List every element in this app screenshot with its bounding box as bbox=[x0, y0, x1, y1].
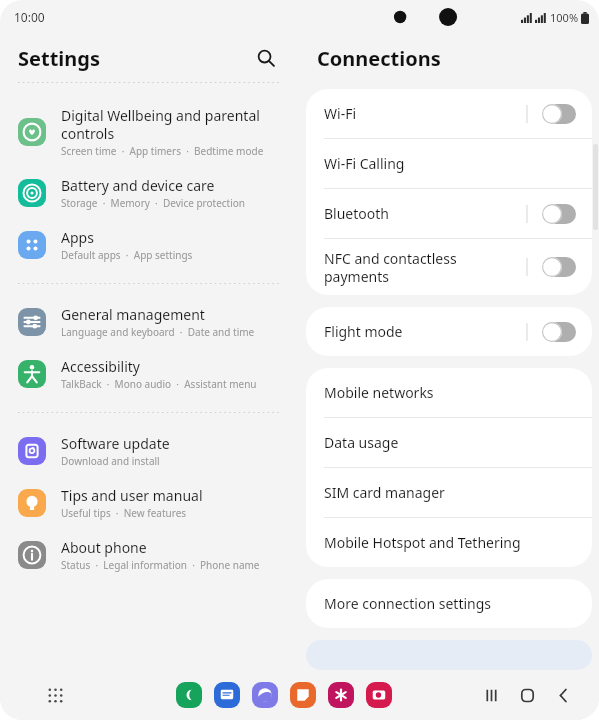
button[interactable]: Bluetooth toggle bbox=[542, 204, 576, 224]
button[interactable]: NFC and contactless payments toggle bbox=[542, 257, 576, 277]
staticText: Data usage bbox=[324, 433, 576, 452]
button[interactable]: Apps bbox=[0, 219, 299, 271]
staticText: Storage · Memory · Device protection bbox=[61, 196, 246, 210]
staticText: 100% bbox=[550, 10, 579, 25]
button[interactable]: Accessibility bbox=[0, 348, 299, 400]
button[interactable]: Search bbox=[251, 43, 281, 73]
staticText: Screen time · App timers · Bedtime mode bbox=[61, 144, 264, 158]
button[interactable]: Messages bbox=[214, 682, 240, 708]
staticText: TalkBack · Mono audio · Assistant menu bbox=[61, 377, 257, 391]
staticText: Battery and device care bbox=[61, 176, 215, 195]
staticText: Wi-Fi bbox=[324, 104, 527, 123]
button[interactable]: Data usage bbox=[306, 418, 592, 467]
button[interactable]: Gallery bbox=[328, 682, 354, 708]
staticText: Mobile Hotspot and Tethering bbox=[324, 533, 576, 552]
button[interactable]: Wi-Fi bbox=[306, 89, 592, 138]
staticText: Digital Wellbeing and parental controls bbox=[61, 106, 260, 143]
staticText: Status · Legal information · Phone name bbox=[61, 558, 260, 572]
staticText: NFC and contactless payments bbox=[324, 249, 527, 286]
button[interactable]: SIM card manager bbox=[306, 468, 592, 517]
button[interactable]: Battery and device care bbox=[0, 167, 299, 219]
button[interactable]: More connection settings bbox=[306, 579, 592, 628]
button[interactable]: Home bbox=[509, 677, 545, 713]
button[interactable]: Flight mode bbox=[306, 307, 592, 356]
staticText: Apps bbox=[61, 228, 94, 247]
staticText: Mobile networks bbox=[324, 383, 576, 402]
button[interactable]: Phone bbox=[176, 682, 202, 708]
staticText: General management bbox=[61, 305, 205, 324]
staticText: Bluetooth bbox=[324, 204, 527, 223]
button[interactable]: Mobile Hotspot and Tethering bbox=[306, 518, 592, 567]
staticText: More connection settings bbox=[324, 594, 576, 613]
button[interactable]: Wi-Fi toggle bbox=[542, 104, 576, 124]
button[interactable]: All apps bbox=[40, 680, 70, 710]
button[interactable]: Notes bbox=[290, 682, 316, 708]
button[interactable]: Flight mode toggle bbox=[542, 322, 576, 342]
button[interactable]: Camera bbox=[366, 682, 392, 708]
staticText: Settings bbox=[18, 45, 100, 72]
staticText: Default apps · App settings bbox=[61, 248, 193, 262]
button[interactable]: NFC and contactless payments bbox=[306, 239, 592, 295]
staticText: Tips and user manual bbox=[61, 486, 203, 505]
staticText: SIM card manager bbox=[324, 483, 576, 502]
staticText: Accessibility bbox=[61, 357, 140, 376]
button[interactable]: Back bbox=[545, 677, 581, 713]
button[interactable]: Internet bbox=[252, 682, 278, 708]
button[interactable]: Bluetooth bbox=[306, 189, 592, 238]
button[interactable]: About phone bbox=[0, 529, 299, 581]
button[interactable]: Software update bbox=[0, 425, 299, 477]
staticText: Connections bbox=[317, 45, 441, 72]
staticText: 10:00 bbox=[14, 9, 45, 25]
staticText: Flight mode bbox=[324, 322, 527, 341]
staticText: Wi-Fi Calling bbox=[324, 154, 576, 173]
button[interactable]: General management bbox=[0, 296, 299, 348]
staticText: About phone bbox=[61, 538, 147, 557]
button[interactable]: Digital Wellbeing and parental controls bbox=[0, 97, 299, 167]
button[interactable]: Recents bbox=[473, 677, 509, 713]
button[interactable]: Tips and user manual bbox=[0, 477, 299, 529]
button[interactable]: Wi-Fi Calling bbox=[306, 139, 592, 188]
button[interactable]: Mobile networks bbox=[306, 368, 592, 417]
staticText: Language and keyboard · Date and time bbox=[61, 325, 255, 339]
staticText: Software update bbox=[61, 434, 170, 453]
staticText: Download and install bbox=[61, 454, 160, 468]
staticText: Useful tips · New features bbox=[61, 506, 187, 520]
